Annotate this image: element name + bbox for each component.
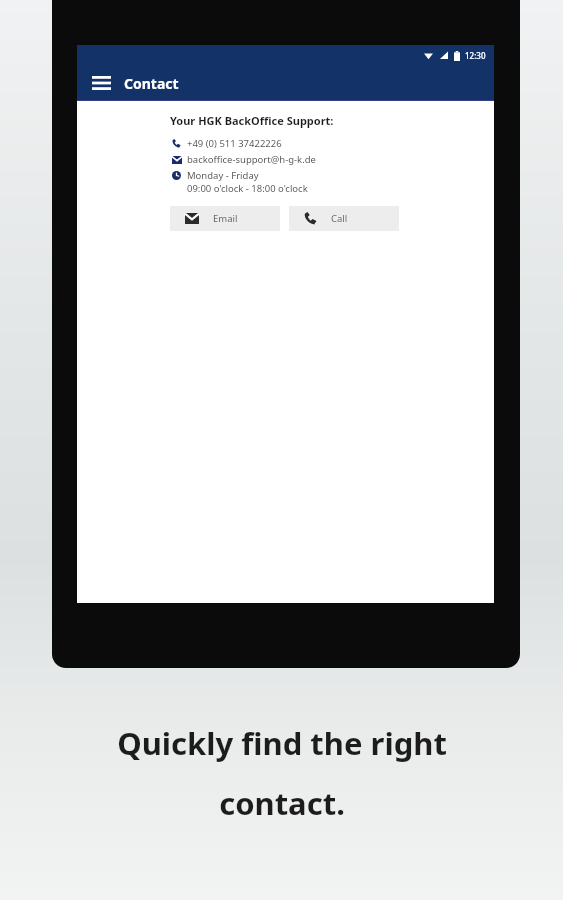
staticText: backoffice-support@h-g-k.de xyxy=(187,153,316,166)
staticText: 09:00 o'clock - 18:00 o'clock xyxy=(187,182,308,195)
button[interactable]: Open navigation menu xyxy=(88,70,114,96)
staticText: Your HGK BackOffice Support: xyxy=(170,113,334,128)
staticText: Contact xyxy=(124,74,179,93)
staticText: contact. xyxy=(219,782,345,824)
button[interactable]: Email xyxy=(170,206,280,231)
staticText: Email xyxy=(213,212,238,225)
staticText: 12:30 xyxy=(465,50,486,61)
button[interactable]: Call xyxy=(289,206,399,231)
staticText: +49 (0) 511 37422226 xyxy=(187,137,282,150)
staticText: Quickly find the right xyxy=(117,722,447,764)
staticText: Call xyxy=(331,212,348,225)
staticText: Monday - Friday xyxy=(187,169,259,182)
